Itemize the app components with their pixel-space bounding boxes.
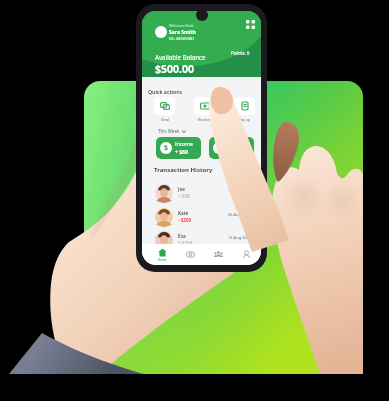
staticText: Welcome Back — [169, 23, 194, 28]
staticText: + $60 — [175, 149, 188, 156]
staticText: Income — [175, 141, 193, 148]
button[interactable]: Eva — [142, 229, 261, 252]
staticText: Home — [158, 258, 167, 262]
staticText: 14 Aug 2023 — [228, 188, 252, 193]
button[interactable]: This Week — [158, 128, 186, 134]
staticText: Available Balance — [155, 53, 206, 61]
button[interactable] — [154, 97, 175, 115]
staticText: + $50 — [178, 193, 190, 199]
staticText: Eva — [178, 233, 186, 239]
button[interactable]: Kate — [142, 206, 261, 229]
button[interactable]: Apps — [242, 16, 258, 32]
staticText: Send — [161, 117, 169, 122]
staticText: $ — [164, 143, 169, 153]
staticText: $ — [217, 143, 222, 153]
staticText: + $350 — [178, 240, 193, 246]
button[interactable]: $ — [209, 137, 254, 159]
button[interactable] — [194, 97, 215, 115]
button[interactable]: Cards — [177, 244, 203, 265]
staticText: Kate — [178, 210, 189, 216]
staticText: $500.00 — [155, 62, 194, 76]
staticText: Points: 0 — [231, 50, 250, 56]
staticText: Quick actions — [148, 88, 183, 95]
staticText: Receive — [198, 117, 211, 122]
staticText: 26 Aug 2023 — [228, 212, 252, 217]
button[interactable]: Contacts — [205, 244, 231, 265]
staticText: Transaction History — [154, 166, 213, 174]
button[interactable] — [234, 97, 255, 115]
button[interactable]: Joe — [142, 182, 261, 205]
staticText: - $200 — [178, 217, 192, 223]
staticText: 13 Aug 2023 — [228, 235, 252, 240]
staticText: This Week — [158, 128, 180, 134]
staticText: ID: 48505881 — [169, 36, 195, 42]
button[interactable]: Profile — [233, 244, 259, 265]
staticText: Top up — [239, 117, 250, 122]
button[interactable]: Home — [149, 244, 175, 265]
staticText: Joe — [178, 186, 185, 192]
staticText: Sara Smith — [169, 29, 196, 36]
button[interactable]: $ — [156, 137, 201, 159]
